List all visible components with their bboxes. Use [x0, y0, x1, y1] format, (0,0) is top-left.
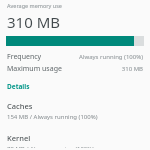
staticText: Maximum usage [7, 64, 62, 74]
staticText: Always running (100%) [79, 53, 143, 61]
staticText: Kernel [7, 133, 31, 143]
button[interactable]: Maximum usage [0, 63, 150, 75]
staticText: Frequency [7, 52, 42, 62]
button[interactable]: Kernel [0, 131, 150, 150]
staticText: Details [7, 82, 30, 91]
staticText: 310 MB [7, 12, 60, 32]
staticText: Caches [7, 101, 33, 111]
button[interactable]: Frequency [0, 51, 150, 63]
button[interactable]: Details [0, 81, 150, 92]
staticText: 310 MB [121, 65, 143, 73]
button[interactable]: Caches [0, 99, 150, 123]
staticText: Average memory use [7, 2, 62, 9]
staticText: 154 MB / Always running (100%) [7, 113, 98, 121]
staticText: 79 MB / Always running (100%) [7, 145, 95, 148]
